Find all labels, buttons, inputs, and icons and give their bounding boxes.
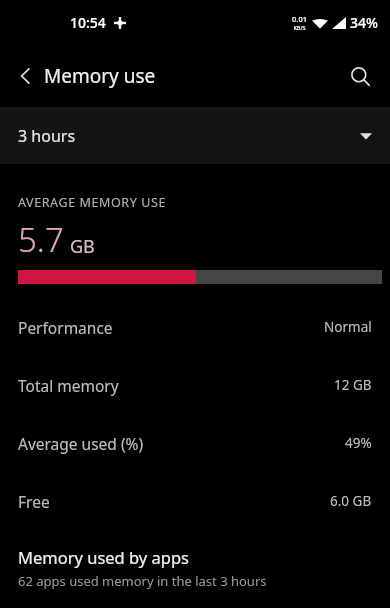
staticText: 10:54: [70, 13, 106, 32]
staticText: Memory use: [44, 63, 156, 89]
button[interactable]: Performance: [0, 298, 390, 356]
button[interactable]: Total memory: [0, 356, 390, 414]
staticText: Memory used by apps: [18, 546, 190, 568]
staticText: Free: [18, 491, 50, 512]
staticText: 3 hours: [18, 125, 76, 147]
staticText: 34%: [350, 13, 378, 32]
button[interactable]: Free: [0, 472, 390, 530]
staticText: 49%: [345, 434, 372, 452]
button[interactable]: Memory used by apps: [0, 538, 390, 602]
staticText: 5.7: [18, 217, 64, 262]
staticText: AVERAGE MEMORY USE: [18, 194, 166, 211]
staticText: Performance: [18, 317, 113, 338]
staticText: KB/S: [293, 24, 306, 31]
staticText: Normal: [324, 318, 372, 336]
staticText: 6.0 GB: [330, 492, 372, 510]
staticText: Total memory: [18, 375, 119, 396]
button[interactable]: 3 hours: [0, 107, 390, 164]
button[interactable]: Average used (%): [0, 414, 390, 472]
staticText: 62 apps used memory in the last 3 hours: [18, 572, 267, 590]
button[interactable]: Back: [8, 58, 44, 94]
staticText: GB: [70, 234, 95, 259]
staticText: 12 GB: [334, 376, 372, 394]
button[interactable]: Search: [340, 56, 380, 96]
staticText: 0.01: [292, 14, 307, 24]
staticText: Average used (%): [18, 433, 144, 454]
